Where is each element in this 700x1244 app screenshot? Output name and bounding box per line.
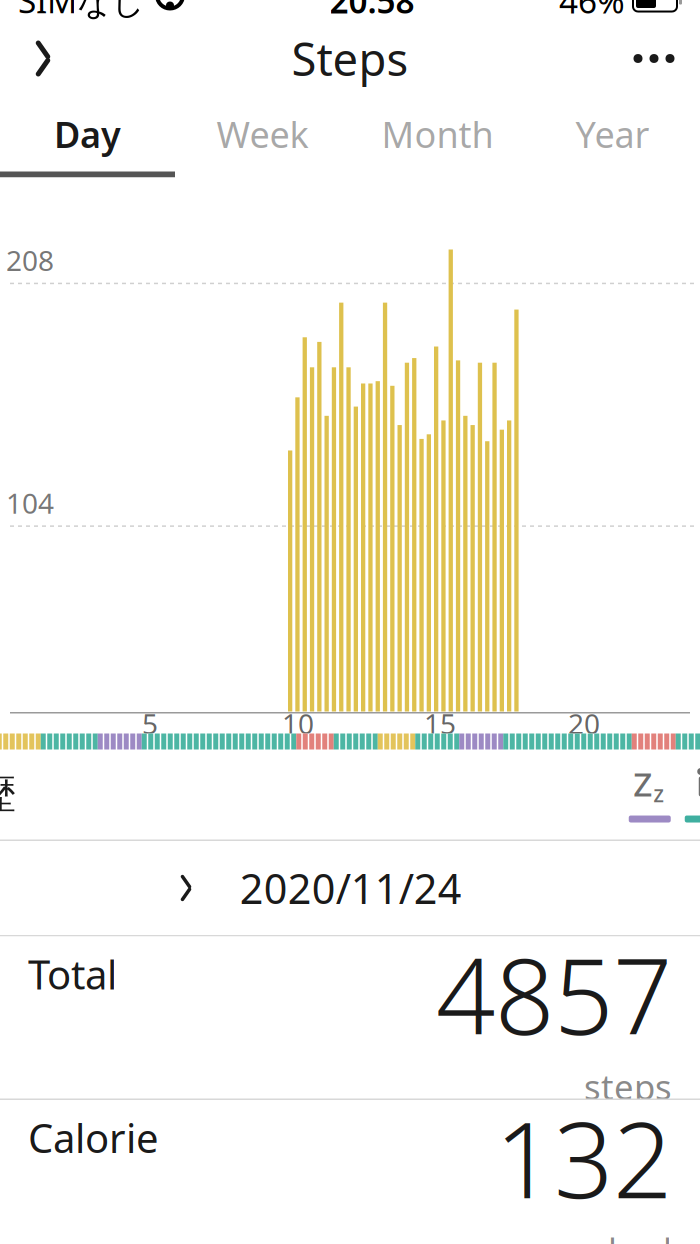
button[interactable]: Week bbox=[175, 96, 350, 171]
staticText: Year bbox=[575, 110, 649, 158]
button[interactable]: 2020/11/24 bbox=[0, 841, 700, 935]
staticText: 10 bbox=[282, 705, 314, 742]
staticText: 46% bbox=[559, 0, 625, 23]
staticText: 活動履歴 bbox=[0, 771, 16, 818]
staticText: 5 bbox=[142, 705, 158, 742]
staticText: kcal bbox=[608, 1227, 672, 1244]
button[interactable]: Month bbox=[350, 96, 525, 171]
staticText: Total bbox=[28, 947, 117, 1000]
staticText: SIMなし bbox=[18, 0, 145, 23]
staticText: 104 bbox=[6, 484, 54, 521]
button[interactable]: Year bbox=[525, 96, 700, 171]
staticText: Steps bbox=[291, 28, 408, 89]
button[interactable]: More options bbox=[618, 25, 690, 91]
staticText: 132 bbox=[495, 1089, 672, 1227]
staticText: 20:58 bbox=[329, 0, 414, 23]
staticText: Month bbox=[381, 110, 493, 158]
staticText: steps bbox=[584, 1063, 672, 1109]
staticText: z bbox=[653, 778, 664, 808]
staticText: Day bbox=[54, 110, 121, 158]
staticText: 20 bbox=[568, 705, 600, 742]
staticText: 15 bbox=[424, 705, 456, 742]
staticText: 208 bbox=[6, 241, 54, 279]
button[interactable]: Back bbox=[10, 25, 76, 91]
staticText: 4857 bbox=[436, 925, 672, 1063]
button[interactable]: Day bbox=[0, 96, 175, 171]
staticText: 2020/11/24 bbox=[240, 861, 462, 915]
staticText: Calorie bbox=[28, 1111, 159, 1164]
staticText: Week bbox=[216, 110, 308, 158]
staticText: Z bbox=[633, 761, 652, 806]
